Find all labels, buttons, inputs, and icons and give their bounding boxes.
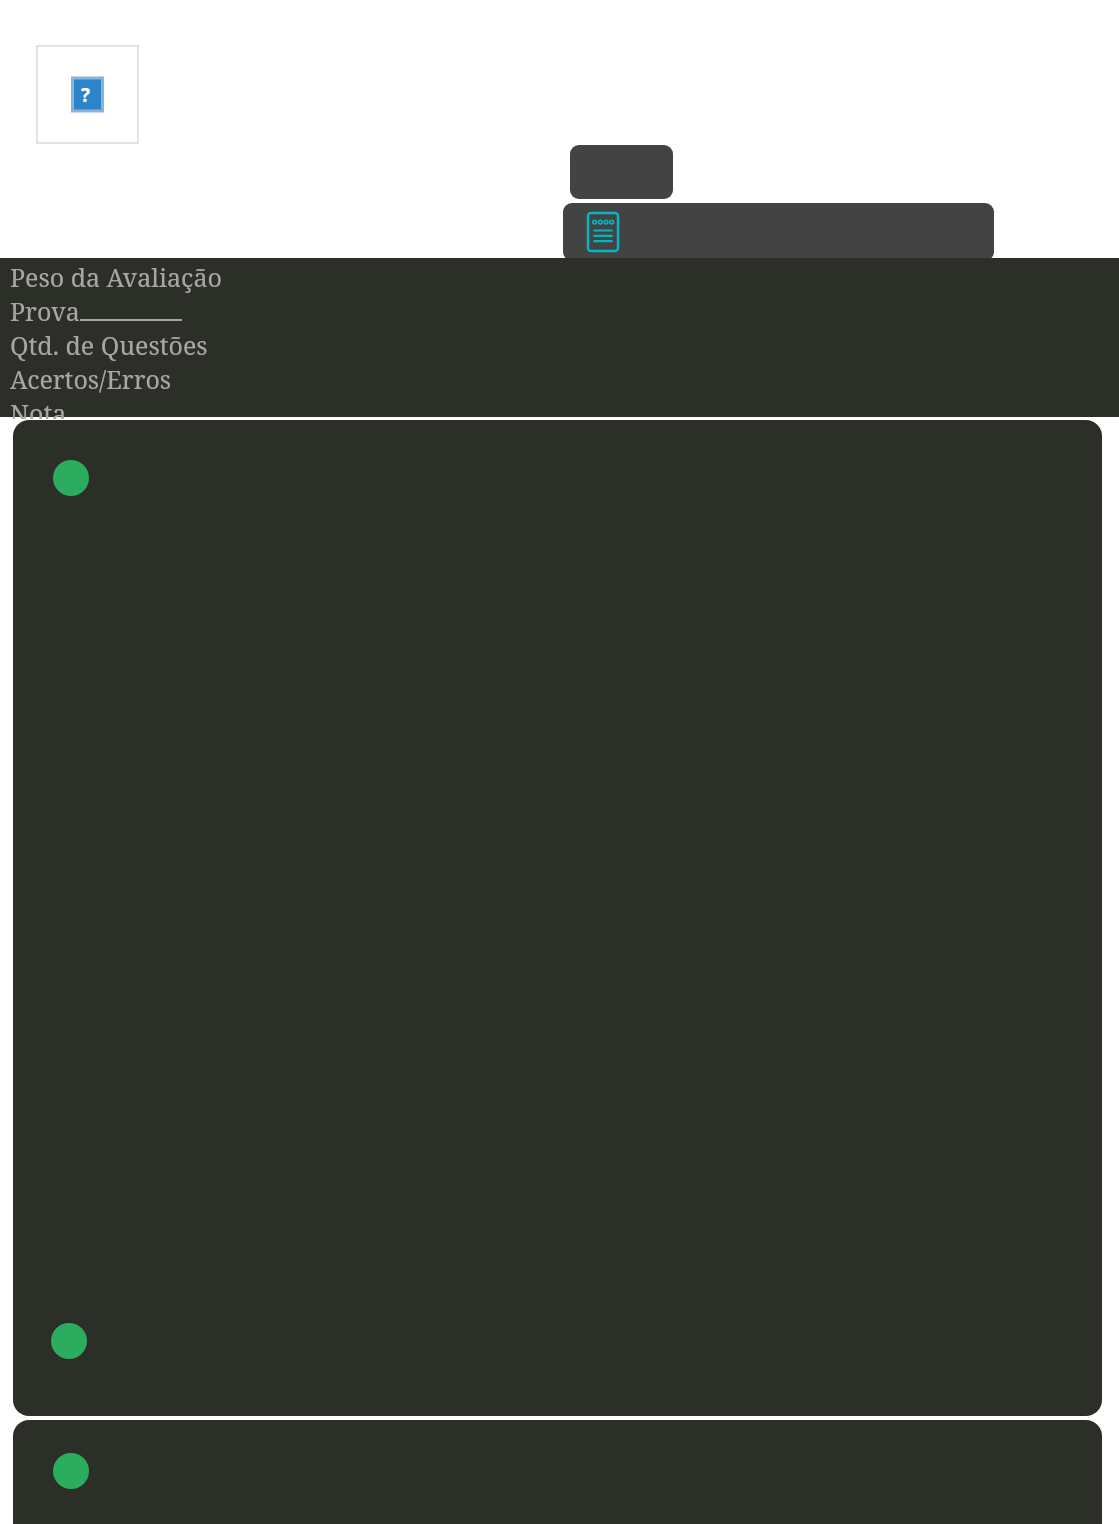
button[interactable]: Ação	[570, 145, 673, 199]
staticText: Acertos/Erros	[10, 362, 172, 396]
button[interactable]: Prova	[563, 203, 994, 261]
button[interactable]	[13, 420, 1102, 1416]
staticText: Nota	[10, 396, 67, 419]
staticText: Qtd. de Questões	[10, 328, 208, 362]
staticText: ?	[81, 82, 91, 108]
staticText: Peso da Avaliação	[10, 260, 222, 294]
button[interactable]: Imagem	[37, 46, 138, 143]
staticText: Prova	[10, 294, 80, 328]
other: Documento	[588, 213, 618, 251]
button[interactable]	[13, 1420, 1102, 1524]
